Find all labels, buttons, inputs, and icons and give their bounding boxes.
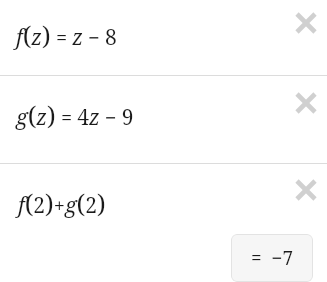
button[interactable]: f(z) = z − 8 <box>0 0 327 75</box>
button[interactable]: Delete expression <box>291 175 321 205</box>
staticText: g(z) = 4z − 9 <box>16 98 134 132</box>
staticText: f(z) = z − 8 <box>16 18 117 52</box>
button[interactable]: f(2)+g(2) <box>18 186 106 220</box>
button[interactable]: Delete expression <box>291 88 321 118</box>
button[interactable]: = −7 <box>231 234 313 282</box>
button[interactable]: Delete expression <box>291 8 321 38</box>
staticText: = −7 <box>251 245 294 271</box>
button[interactable]: g(z) = 4z − 9 <box>0 76 327 163</box>
